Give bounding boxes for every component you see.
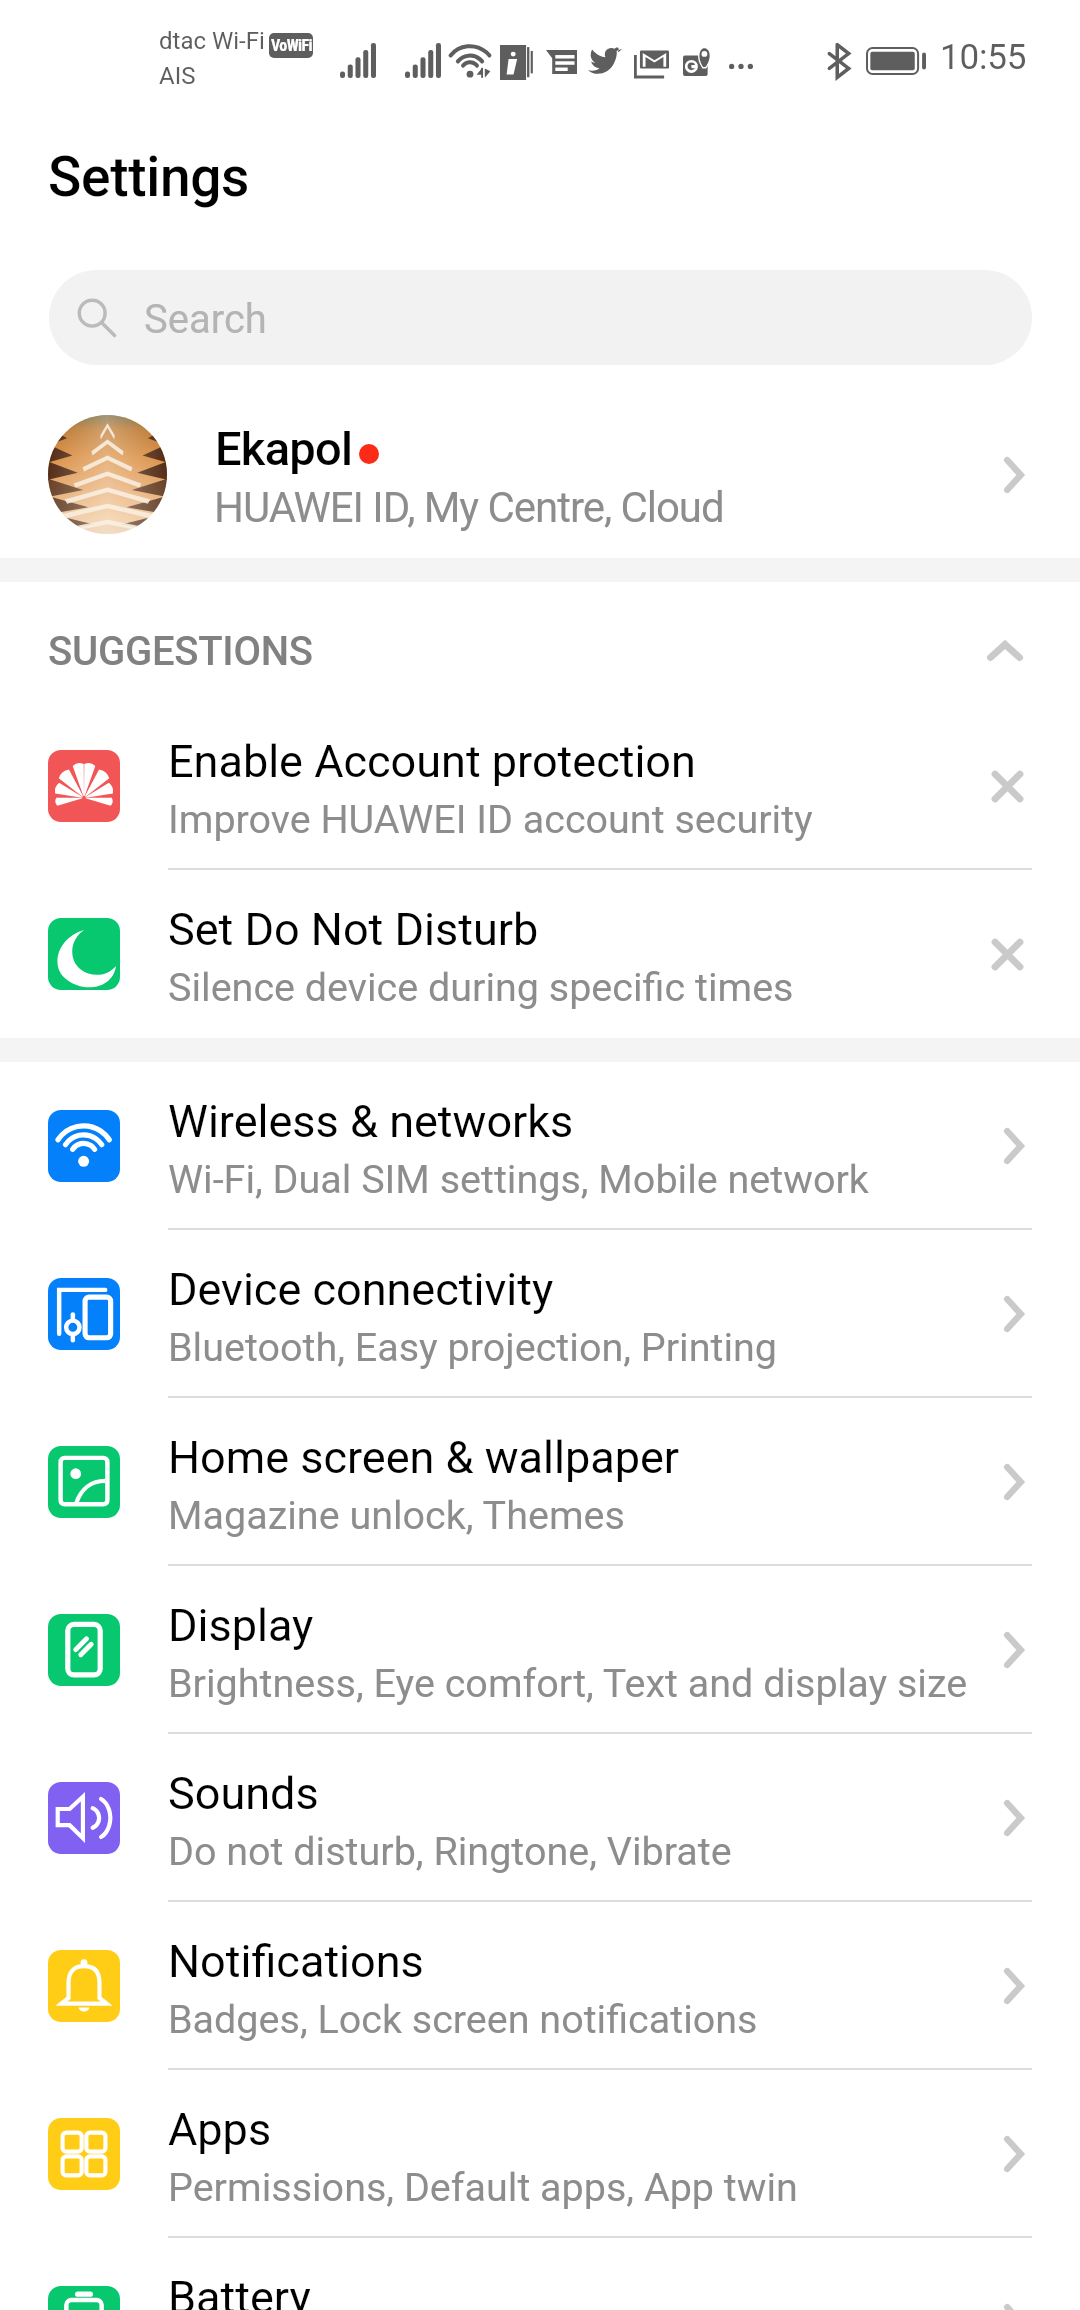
staticText: Battery bbox=[168, 2271, 311, 2310]
staticText: Settings bbox=[48, 145, 250, 209]
other: Collapse suggestions bbox=[987, 641, 1023, 661]
staticText: Notifications bbox=[168, 1935, 424, 1988]
button[interactable]: Display bbox=[0, 1566, 1080, 1734]
staticText: Permissions, Default apps, App twin bbox=[168, 2164, 798, 2210]
staticText: Wi-Fi, Dual SIM settings, Mobile network bbox=[168, 1156, 869, 1202]
button[interactable]: Enable Account protection bbox=[0, 702, 1080, 870]
button[interactable]: Device connectivity bbox=[0, 1230, 1080, 1398]
button[interactable]: Wireless & networks bbox=[0, 1062, 1080, 1230]
staticText: Brightness, Eye comfort, Text and displa… bbox=[168, 1660, 968, 1706]
button[interactable]: Sounds bbox=[0, 1734, 1080, 1902]
staticText: Search bbox=[144, 296, 267, 343]
staticText: SUGGESTIONS bbox=[48, 628, 313, 675]
staticText: dtac Wi-Fi bbox=[159, 27, 265, 55]
staticText: Ekapol bbox=[215, 421, 353, 476]
staticText: Sounds bbox=[168, 1767, 319, 1820]
staticText: AIS bbox=[159, 62, 196, 90]
button[interactable]: Ekapol bbox=[0, 383, 1080, 551]
staticText: Display bbox=[168, 1599, 314, 1652]
staticText: Badges, Lock screen notifications bbox=[168, 1996, 758, 2042]
button[interactable]: Set Do Not Disturb bbox=[0, 870, 1080, 1038]
staticText: Home screen & wallpaper bbox=[168, 1431, 680, 1484]
staticText: Do not disturb, Ringtone, Vibrate bbox=[168, 1828, 732, 1874]
staticText: Device connectivity bbox=[168, 1263, 554, 1316]
button[interactable]: Apps bbox=[0, 2070, 1080, 2238]
staticText: VoWiFi bbox=[271, 36, 312, 55]
button[interactable]: Notifications bbox=[0, 1902, 1080, 2070]
button[interactable]: Battery bbox=[0, 2238, 1080, 2310]
button[interactable]: Home screen & wallpaper bbox=[0, 1398, 1080, 1566]
staticText: Bluetooth, Easy projection, Printing bbox=[168, 1324, 778, 1370]
button[interactable]: Dismiss suggestion bbox=[979, 926, 1035, 982]
button[interactable]: SUGGESTIONS bbox=[0, 582, 1080, 702]
staticText: HUAWEI ID, My Centre, Cloud bbox=[214, 483, 724, 532]
staticText: Magazine unlock, Themes bbox=[168, 1492, 625, 1538]
staticText: Enable Account protection bbox=[168, 735, 696, 788]
staticText: Improve HUAWEI ID account security bbox=[168, 796, 813, 842]
button[interactable]: Dismiss suggestion bbox=[979, 758, 1035, 814]
staticText: Set Do Not Disturb bbox=[168, 903, 539, 956]
staticText: Silence device during specific times bbox=[168, 964, 794, 1010]
staticText: 10:55 bbox=[940, 37, 1027, 78]
staticText: Wireless & networks bbox=[168, 1095, 574, 1148]
staticText: Apps bbox=[168, 2103, 272, 2156]
button[interactable]: Search bbox=[49, 270, 1032, 365]
